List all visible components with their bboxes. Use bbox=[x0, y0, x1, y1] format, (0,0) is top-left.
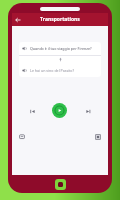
button[interactable]: Back bbox=[12, 14, 24, 26]
button[interactable]: Favourite bbox=[16, 131, 28, 143]
staticText: Quando è il tuo viaggio per Firenze? bbox=[30, 46, 92, 51]
button[interactable]: Previous bbox=[26, 105, 38, 117]
button[interactable]: Le hai un vino del Passito? bbox=[19, 64, 101, 77]
button[interactable]: Home bbox=[55, 179, 66, 190]
staticText: Transportations bbox=[40, 16, 80, 23]
staticText: Le hai un vino del Passito? bbox=[30, 68, 75, 73]
button[interactable]: Next bbox=[82, 105, 94, 117]
button[interactable]: Keyboard bbox=[92, 131, 104, 143]
button[interactable]: Play bbox=[52, 103, 67, 118]
button[interactable]: Quando è il tuo viaggio per Firenze? bbox=[19, 42, 101, 55]
